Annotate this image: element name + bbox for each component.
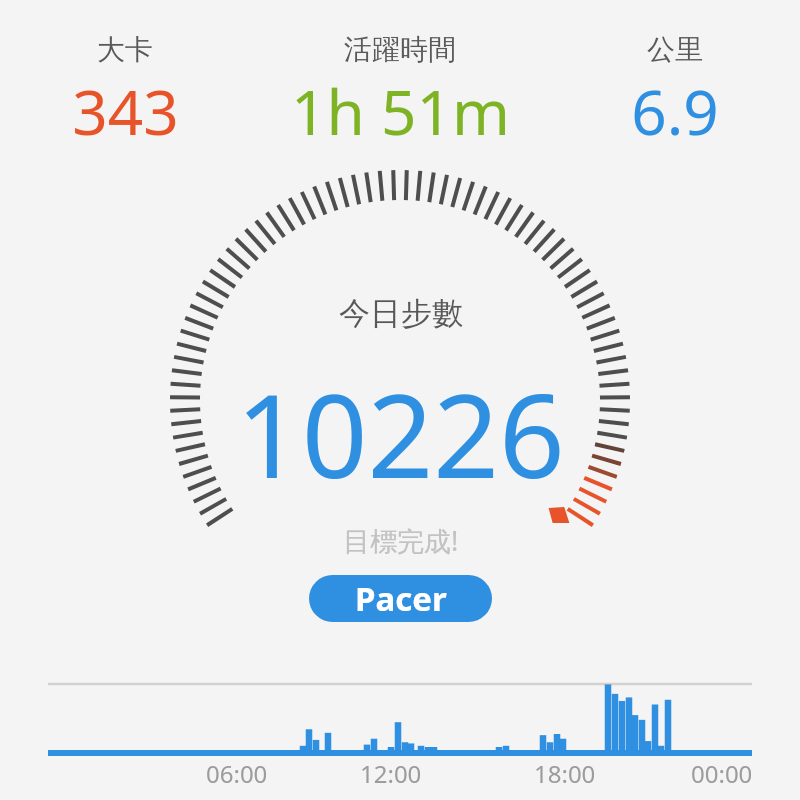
staticText: 6.9 bbox=[631, 69, 719, 153]
staticText: 10226 bbox=[236, 355, 565, 512]
staticText: 1h 51m bbox=[291, 69, 510, 153]
button[interactable] bbox=[0, 665, 800, 760]
staticText: Pacer bbox=[355, 576, 447, 621]
other: Daily step progress dial bbox=[140, 140, 660, 660]
staticText: 18:00 bbox=[534, 757, 596, 790]
staticText: 00:00 bbox=[691, 757, 753, 790]
staticText: 活躍時間 bbox=[344, 32, 456, 67]
staticText: 06:00 bbox=[206, 757, 268, 790]
staticText: 今日步數 bbox=[339, 294, 463, 333]
staticText: 目標完成! bbox=[343, 522, 459, 559]
button[interactable]: 今日步數 bbox=[236, 294, 565, 559]
button[interactable]: 公里 bbox=[593, 32, 757, 153]
staticText: 公里 bbox=[647, 32, 703, 67]
button[interactable]: 活躍時間 bbox=[260, 32, 540, 153]
staticText: 12:00 bbox=[360, 757, 422, 790]
staticText: 343 bbox=[72, 69, 179, 153]
button[interactable]: 大卡 bbox=[43, 32, 207, 153]
staticText: 大卡 bbox=[97, 32, 153, 67]
button[interactable]: Pacer bbox=[309, 575, 492, 622]
